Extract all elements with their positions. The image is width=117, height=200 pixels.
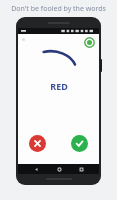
staticText: Don't be fooled by the words <box>11 4 106 14</box>
button[interactable]: Correct <box>71 135 88 152</box>
button[interactable]: Recents <box>76 164 86 174</box>
button[interactable]: Back <box>31 164 41 174</box>
button[interactable]: Wrong <box>29 135 46 152</box>
button[interactable]: Home <box>54 164 64 174</box>
staticText: RED <box>50 80 68 92</box>
button[interactable]: Timer <box>84 37 95 48</box>
